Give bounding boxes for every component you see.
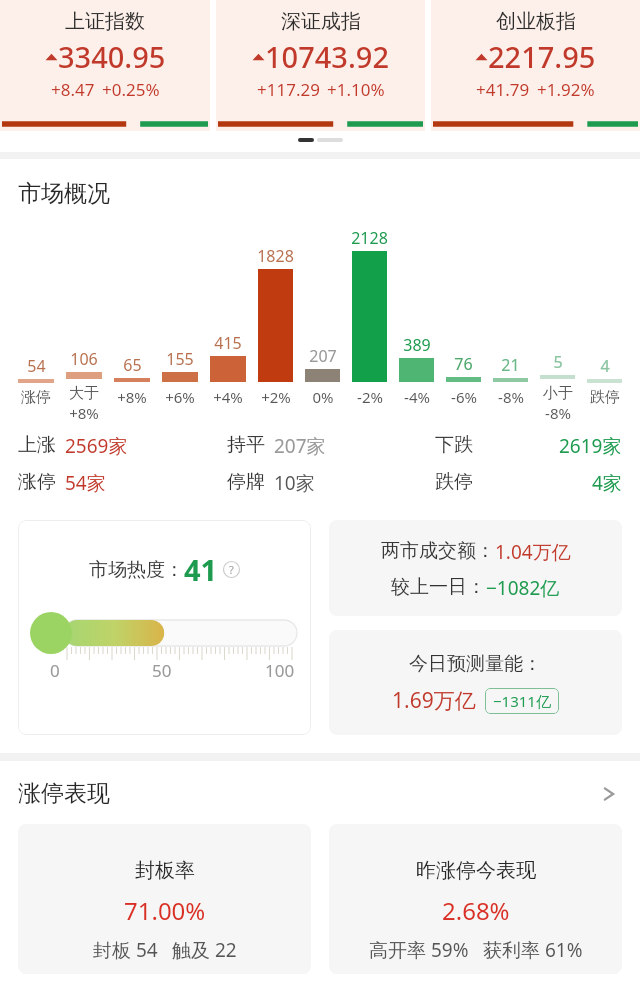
staticText: 207 — [309, 345, 337, 367]
staticText: 4家 — [592, 470, 622, 496]
staticText: 50 — [152, 659, 172, 682]
staticText: 涨停 — [18, 470, 56, 494]
staticText: 停牌 — [227, 470, 265, 494]
staticText: 5 — [553, 351, 563, 373]
staticText: 今日预测量能： — [409, 652, 542, 676]
staticText: 1.04万亿 — [495, 539, 571, 565]
staticText: 涨停表现 — [18, 779, 110, 808]
staticText: 10家 — [274, 470, 315, 496]
staticText: 54家 — [65, 470, 106, 496]
staticText: +1.92% — [537, 78, 595, 101]
staticText: 21 — [501, 354, 520, 376]
button[interactable]: 帮助 — [223, 561, 240, 578]
staticText: 2619家 — [559, 433, 622, 459]
staticText: 获利率 61% — [483, 937, 583, 963]
staticText: 2569家 — [65, 433, 128, 459]
staticText: +1.10% — [327, 78, 385, 101]
staticText: 跌停 — [435, 470, 473, 494]
button[interactable]: 上证指数 — [0, 0, 210, 131]
staticText: 106 — [70, 348, 98, 370]
staticText: 415 — [214, 332, 242, 354]
staticText: 封板率 — [135, 858, 195, 883]
staticText: 54 — [27, 355, 46, 377]
other: 查看更多 — [596, 781, 622, 807]
staticText: 跌停 — [590, 388, 620, 407]
staticText: 3340.95 — [58, 37, 166, 76]
staticText: 71.00% — [124, 894, 206, 927]
staticText: −1082亿 — [486, 575, 560, 601]
staticText: 高开率 59% — [369, 937, 469, 963]
staticText: 市场概况 — [18, 179, 110, 208]
staticText: -8% — [545, 403, 571, 423]
staticText: 0% — [312, 387, 334, 407]
staticText: 触及 22 — [172, 937, 237, 963]
staticText: -8% — [498, 387, 524, 407]
staticText: 65 — [123, 354, 142, 376]
button[interactable]: 创业板指 — [431, 0, 640, 131]
staticText: +2% — [261, 387, 291, 407]
staticText: 创业板指 — [496, 9, 576, 34]
staticText: +6% — [165, 387, 195, 407]
button[interactable]: 涨停表现 — [18, 779, 622, 808]
staticText: 4 — [600, 355, 610, 377]
staticText: 大于 — [69, 384, 99, 403]
staticText: 较上一日： — [391, 575, 486, 599]
staticText: -6% — [451, 387, 477, 407]
button[interactable]: 昨涨停今表现 — [329, 824, 622, 974]
staticText: +0.25% — [102, 78, 160, 101]
staticText: 2128 — [351, 227, 388, 249]
staticText: 下跌 — [435, 433, 473, 457]
staticText: +8.47 — [51, 78, 95, 101]
staticText: 上涨 — [18, 433, 56, 457]
staticText: +41.79 — [476, 78, 530, 101]
button[interactable]: 封板率 — [18, 824, 311, 974]
button[interactable]: 深证成指 — [216, 0, 425, 131]
staticText: 封板 54 — [93, 937, 158, 963]
staticText: 100 — [265, 659, 295, 682]
staticText: +8% — [69, 403, 99, 423]
staticText: 41 — [184, 550, 218, 589]
staticText: +8% — [117, 387, 147, 407]
staticText: 2217.95 — [488, 37, 596, 76]
staticText: 市场热度： — [89, 558, 184, 582]
staticText: 1.69万亿 — [392, 686, 476, 715]
staticText: 207家 — [274, 433, 326, 459]
staticText: 76 — [454, 353, 473, 375]
staticText: 1828 — [257, 245, 294, 267]
staticText: 两市成交额： — [381, 539, 495, 563]
staticText: 深证成指 — [281, 9, 361, 34]
staticText: 持平 — [227, 433, 265, 457]
staticText: 10743.92 — [265, 37, 390, 76]
button[interactable]: 市场热度： — [18, 520, 311, 735]
staticText: −1311亿 — [493, 691, 551, 711]
staticText: 涨停 — [21, 388, 51, 407]
staticText: 小于 — [543, 384, 573, 403]
staticText: -4% — [404, 387, 430, 407]
staticText: 上证指数 — [65, 9, 145, 34]
button[interactable]: 两市成交额： — [329, 520, 622, 616]
button[interactable]: 今日预测量能： — [329, 630, 622, 735]
staticText: 389 — [403, 334, 431, 356]
staticText: 155 — [166, 348, 194, 370]
staticText: -2% — [357, 387, 383, 407]
staticText: +4% — [213, 387, 243, 407]
staticText: ? — [229, 562, 234, 577]
staticText: 昨涨停今表现 — [416, 858, 536, 883]
staticText: 2.68% — [442, 894, 510, 927]
staticText: +117.29 — [257, 78, 320, 101]
staticText: 0 — [50, 659, 60, 682]
